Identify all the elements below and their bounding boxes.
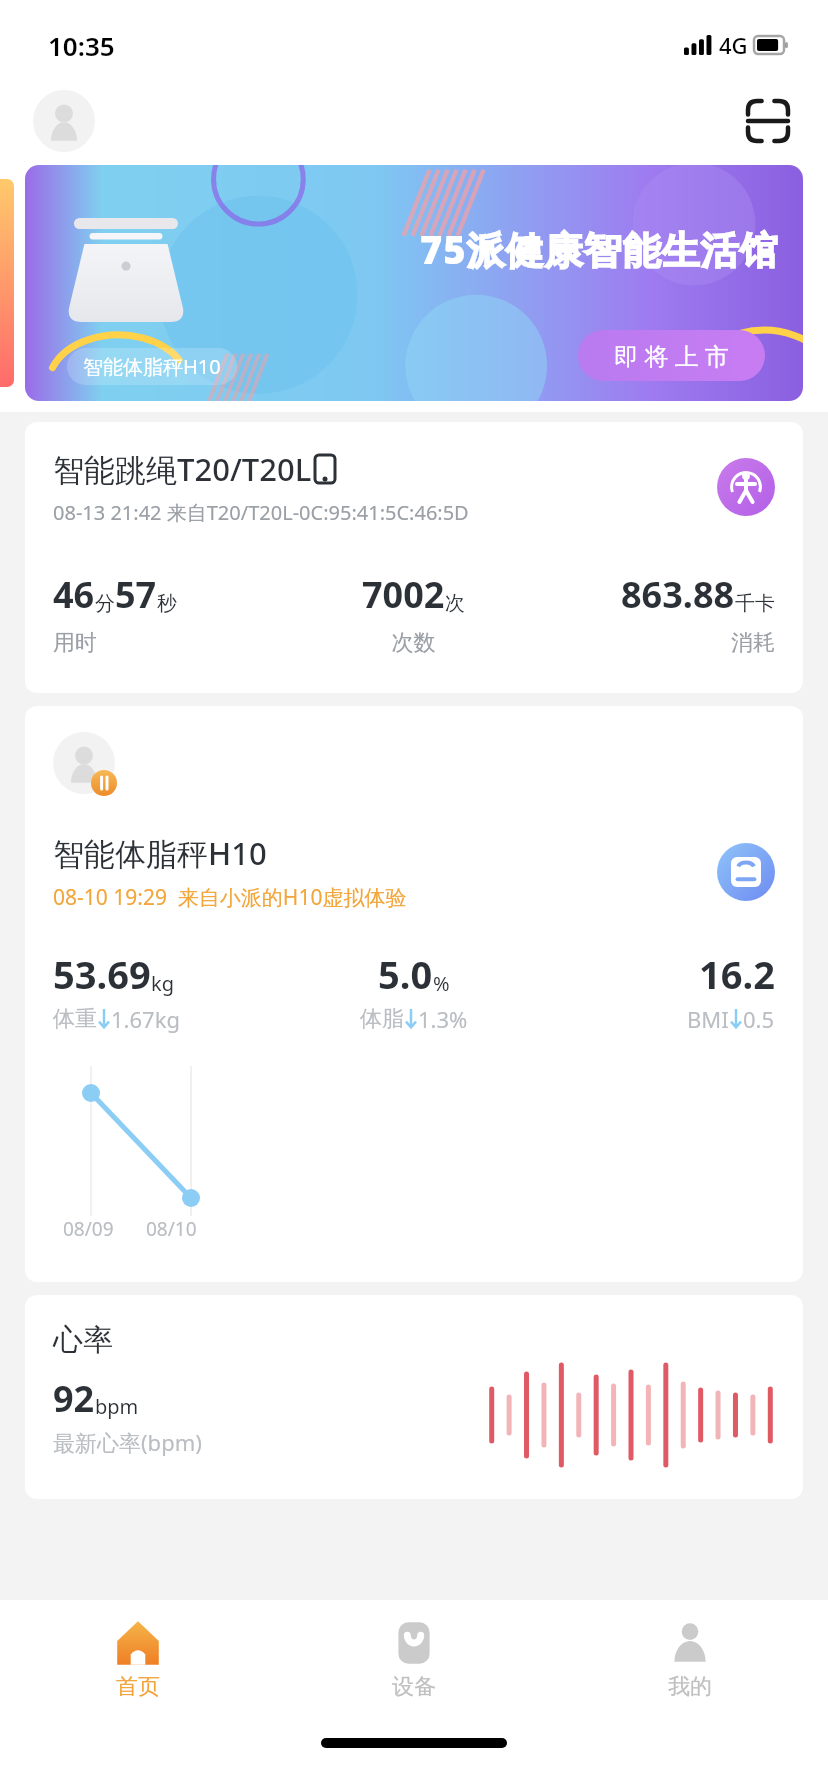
button[interactable]: 首页	[0, 1600, 276, 1718]
staticText: 75派健康智能生活馆	[420, 223, 779, 275]
staticText: 0.5	[743, 1004, 775, 1034]
staticText: 心率	[53, 1321, 113, 1359]
staticText: 体脂	[360, 1005, 404, 1033]
staticText: 即 将 上 市	[614, 339, 729, 372]
staticText: 46	[53, 570, 95, 619]
staticText: 08/10	[146, 1216, 197, 1242]
staticText: 最新心率(bpm)	[53, 1427, 202, 1457]
button[interactable]: 设备	[276, 1600, 552, 1718]
staticText: 863.88	[621, 570, 735, 619]
button[interactable]: 心率	[25, 1295, 803, 1499]
staticText: 用时	[53, 629, 293, 657]
staticText: bpm	[95, 1393, 139, 1420]
staticText: 57	[115, 570, 157, 619]
staticText: 消耗	[534, 629, 775, 657]
staticText: 秒	[157, 591, 177, 616]
staticText: 智能体脂秤H10	[53, 832, 267, 874]
staticText: 分	[95, 591, 115, 616]
staticText: 08-13 21:42 来自T20/T20L-0C:95:41:5C:46:5D	[53, 499, 469, 526]
staticText: 16.2	[699, 948, 775, 1000]
staticText: 体重	[53, 1005, 97, 1033]
button[interactable]: 智能体脂秤H10	[25, 165, 803, 401]
staticText: 5.0	[378, 948, 433, 1000]
button[interactable]: 即 将 上 市	[578, 330, 765, 381]
staticText: 次	[445, 591, 465, 616]
button[interactable]: Jump rope	[717, 458, 775, 516]
staticText: 10:35	[48, 28, 115, 63]
button[interactable]: Profile	[33, 90, 95, 152]
staticText: BMI	[687, 1004, 729, 1034]
staticText: 设备	[392, 1673, 436, 1701]
staticText: 92	[53, 1374, 95, 1423]
staticText: 我的	[668, 1673, 712, 1701]
staticText: 智能跳绳T20/T20L	[53, 448, 312, 490]
button[interactable]: 智能体脂秤H10	[25, 706, 803, 1282]
staticText: 次数	[293, 629, 534, 657]
staticText: 智能体脂秤H10	[83, 353, 221, 380]
staticText: 1.3%	[418, 1004, 468, 1034]
staticText: 7002	[362, 570, 445, 619]
staticText: 08/09	[63, 1216, 114, 1242]
button[interactable]: 智能跳绳T20/T20L	[25, 422, 803, 693]
staticText: 首页	[116, 1673, 160, 1701]
staticText: kg	[151, 970, 174, 997]
staticText: 1.67kg	[111, 1004, 180, 1034]
staticText: 08-10 19:29 来自小派的H10虚拟体验	[53, 883, 407, 912]
staticText: 53.69	[53, 948, 151, 1000]
button[interactable]: 我的	[552, 1600, 828, 1718]
staticText: %	[433, 970, 450, 997]
button[interactable]: Scan QR code	[744, 97, 792, 145]
button[interactable]: Body scale	[717, 843, 775, 901]
staticText: 千卡	[735, 591, 775, 616]
staticText: 4G	[719, 30, 748, 60]
